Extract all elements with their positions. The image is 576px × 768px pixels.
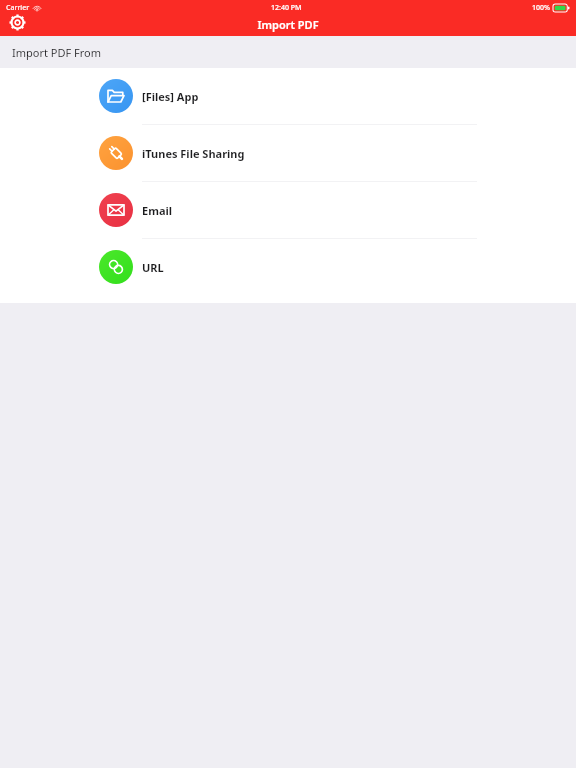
button[interactable]: Settings bbox=[4, 9, 30, 35]
button[interactable]: [Files] App bbox=[0, 68, 576, 124]
button[interactable]: iTunes File Sharing bbox=[0, 125, 576, 181]
staticText: 100% bbox=[532, 3, 550, 13]
staticText: URL bbox=[142, 260, 164, 275]
staticText: Import PDF From bbox=[12, 45, 102, 60]
staticText: [Files] App bbox=[142, 89, 199, 104]
staticText: Import PDF bbox=[257, 17, 319, 32]
staticText: Carrier bbox=[6, 3, 30, 13]
staticText: iTunes File Sharing bbox=[142, 146, 245, 161]
staticText: Email bbox=[142, 203, 173, 218]
button[interactable]: Email bbox=[0, 182, 576, 238]
button[interactable]: URL bbox=[0, 239, 576, 295]
staticText: 12:40 PM bbox=[271, 3, 302, 13]
